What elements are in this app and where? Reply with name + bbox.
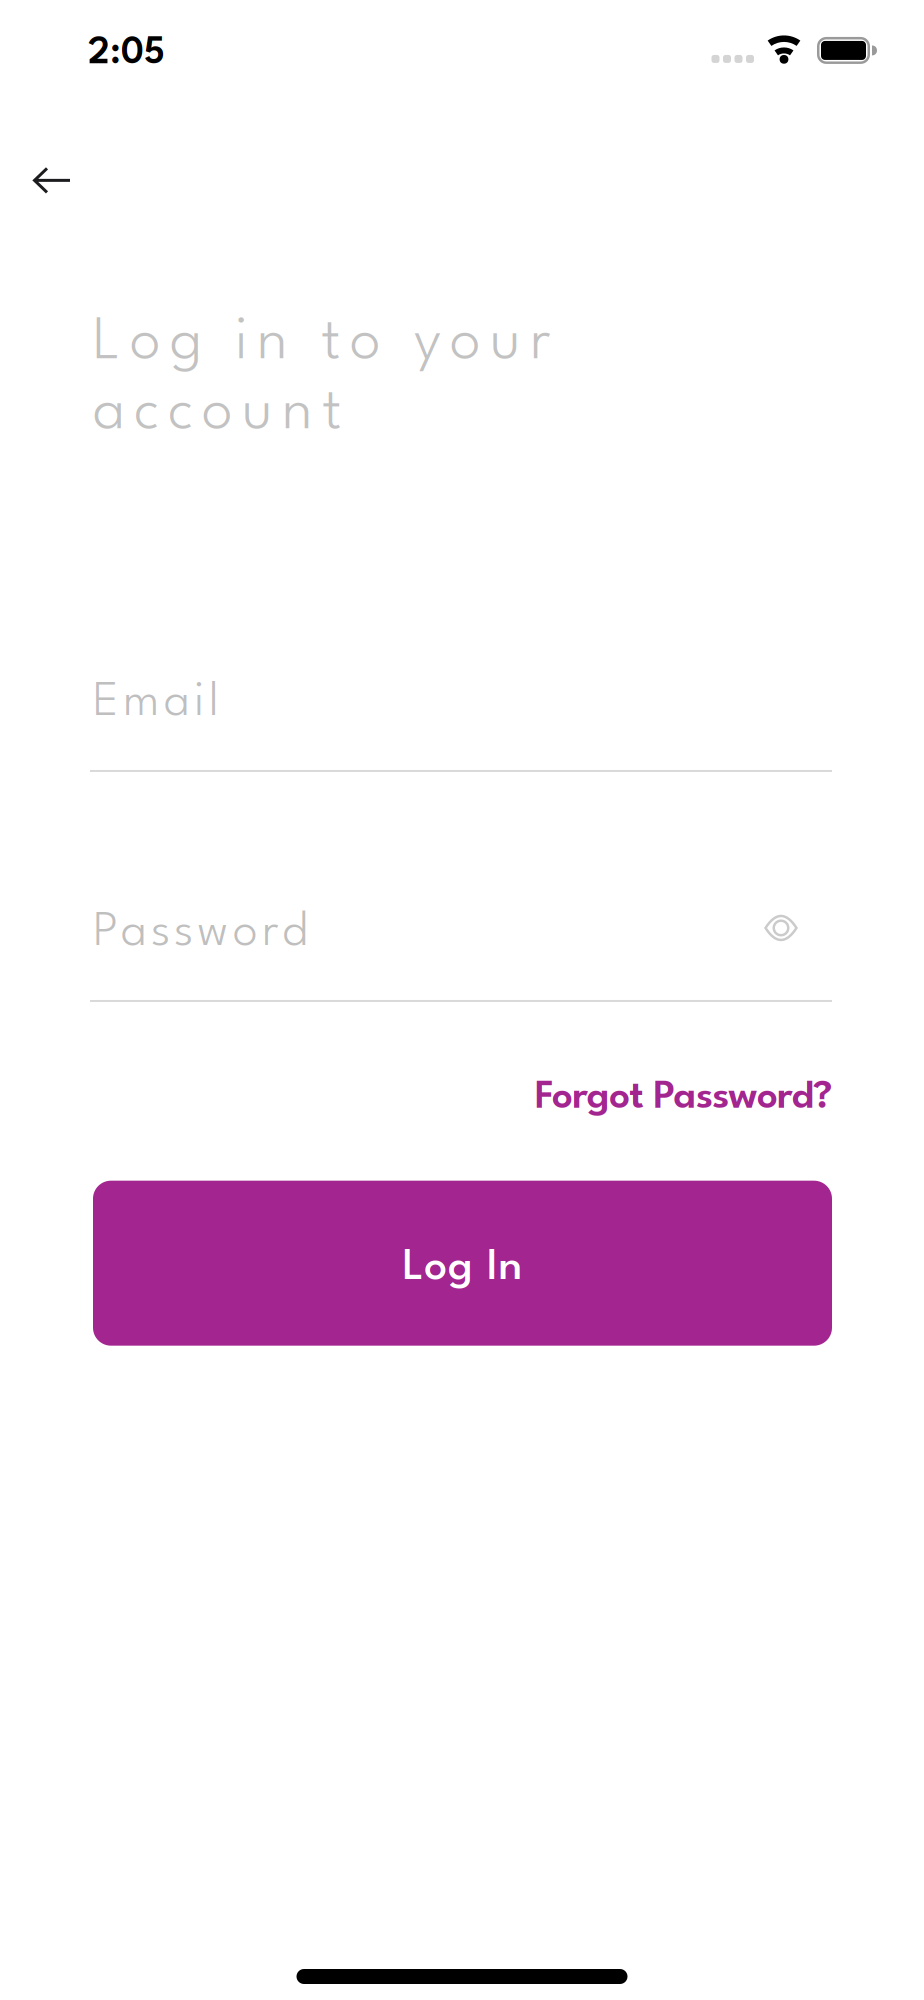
staticText: Password <box>93 910 307 956</box>
staticText: Log In <box>402 1247 522 1289</box>
staticText: Log in to your account <box>93 315 550 442</box>
button[interactable]: Show password <box>764 915 798 941</box>
button[interactable]: Log In <box>93 1181 832 1346</box>
button[interactable]: Forgot Password? <box>535 1079 832 1117</box>
staticText: Email <box>93 680 219 726</box>
staticText: 2:05 <box>88 36 165 72</box>
button[interactable]: Back <box>0 65 71 194</box>
staticText: Forgot Password? <box>535 1079 832 1117</box>
